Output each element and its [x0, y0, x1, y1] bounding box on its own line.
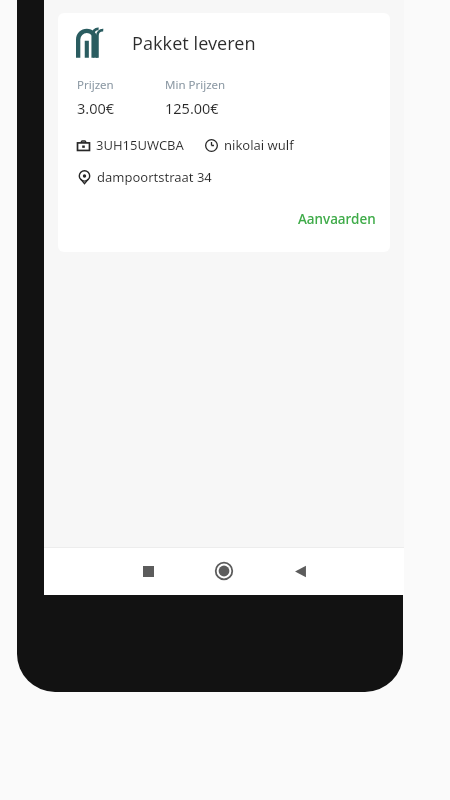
other: App logo [76, 27, 108, 59]
staticText: 125.00€ [165, 98, 219, 118]
button[interactable]: Back [276, 547, 324, 595]
button[interactable]: Home [200, 547, 248, 595]
staticText: Aanvaarden [298, 210, 376, 228]
staticText: 3.00€ [77, 98, 115, 118]
button[interactable]: Recents [124, 547, 172, 595]
staticText: 3UH15UWCBA [96, 136, 184, 154]
staticText: Prijzen [77, 77, 114, 93]
staticText: Pakket leveren [132, 31, 256, 56]
staticText: dampoortstraat 34 [97, 168, 212, 186]
button[interactable]: Aanvaarden [284, 206, 390, 232]
button[interactable]: App logo [58, 13, 390, 252]
staticText: Min Prijzen [165, 77, 226, 93]
staticText: nikolai wulf [224, 136, 294, 154]
